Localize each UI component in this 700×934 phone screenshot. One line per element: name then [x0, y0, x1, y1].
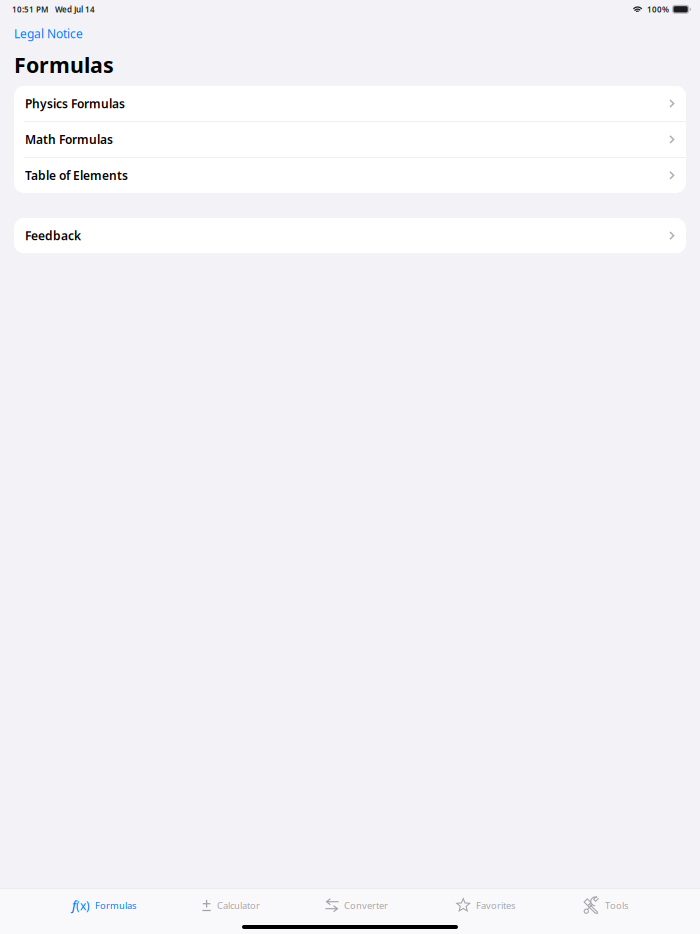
- staticText: Tools: [605, 899, 628, 912]
- button[interactable]: Favorites: [450, 887, 521, 924]
- button[interactable]: Legal Notice: [13, 23, 84, 44]
- staticText: Formulas: [95, 899, 136, 912]
- staticText: Wed Jul 14: [55, 4, 95, 15]
- button[interactable]: Calculator: [195, 887, 266, 924]
- staticText: Physics Formulas: [25, 96, 125, 111]
- button[interactable]: f: [66, 887, 142, 924]
- staticText: Favorites: [476, 899, 515, 912]
- button[interactable]: Tools: [577, 887, 634, 924]
- button[interactable]: Feedback: [14, 218, 686, 253]
- staticText: Table of Elements: [25, 167, 128, 183]
- button[interactable]: Math Formulas: [14, 122, 686, 157]
- staticText: Formulas: [14, 51, 114, 79]
- staticText: Calculator: [217, 899, 260, 912]
- staticText: Converter: [344, 899, 388, 912]
- staticText: f: [72, 897, 76, 913]
- button[interactable]: Physics Formulas: [14, 86, 686, 121]
- button[interactable]: Converter: [319, 887, 394, 924]
- button[interactable]: Table of Elements: [14, 158, 686, 193]
- staticText: (x): [76, 897, 90, 913]
- staticText: 100%: [647, 4, 669, 15]
- staticText: Legal Notice: [14, 26, 83, 41]
- staticText: Math Formulas: [25, 131, 113, 147]
- staticText: Feedback: [25, 228, 81, 244]
- staticText: 10:51 PM: [12, 4, 48, 15]
